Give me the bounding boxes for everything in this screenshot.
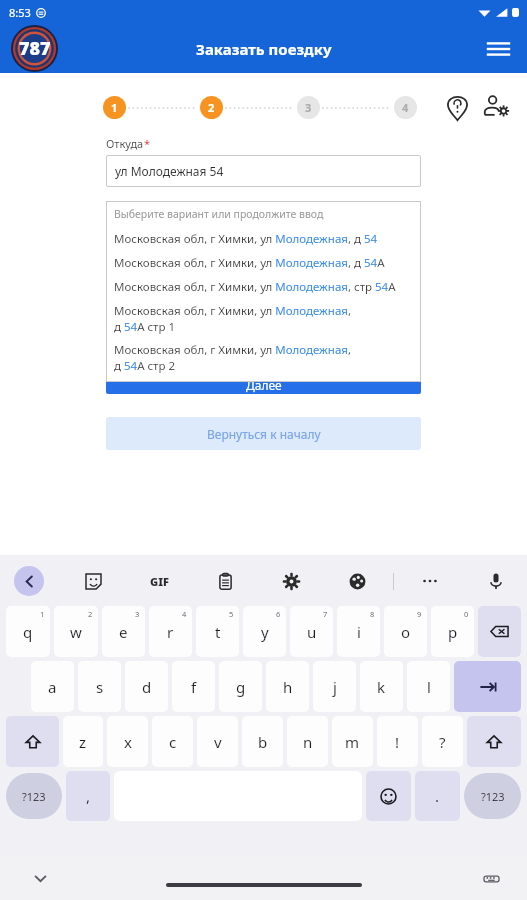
button[interactable]: Sticker — [76, 564, 110, 598]
button[interactable]: d — [125, 661, 168, 712]
staticText: . — [435, 786, 440, 806]
staticText: t — [215, 622, 221, 642]
button[interactable]: Clipboard — [208, 564, 242, 598]
staticText: Московская обл, г Химки, ул Молодежная, … — [114, 303, 352, 334]
button[interactable]: q — [6, 606, 50, 657]
staticText: 1 — [111, 100, 118, 115]
button[interactable]: 787 logo — [11, 25, 58, 72]
staticText: ул Молодежная 54 — [115, 163, 224, 179]
button[interactable]: Shift — [467, 716, 521, 767]
button[interactable]: r — [149, 606, 192, 657]
button[interactable]: s — [78, 661, 121, 712]
button[interactable]: GIF — [142, 564, 176, 598]
staticText: s — [96, 677, 104, 697]
button[interactable]: b — [242, 716, 283, 767]
staticText: 787 — [19, 36, 51, 61]
button[interactable]: Switch keyboard — [477, 864, 505, 892]
button[interactable]: Help — [441, 91, 473, 123]
staticText: Московская обл, г Химки, ул Молодежная, … — [114, 255, 385, 271]
button[interactable]: g — [219, 661, 262, 712]
button[interactable]: 1 — [103, 96, 126, 119]
button[interactable]: Account settings — [479, 90, 513, 124]
button[interactable]: Tab — [454, 661, 521, 712]
button[interactable]: y — [243, 606, 286, 657]
staticText: , — [86, 786, 91, 806]
button[interactable]: w — [54, 606, 98, 657]
button[interactable]: Московская обл, г Химки, ул Молодежная, … — [114, 339, 413, 376]
staticText: w — [70, 622, 82, 642]
staticText: d — [142, 677, 152, 697]
button[interactable]: Московская обл, г Химки, ул Молодежная, … — [114, 300, 413, 337]
button[interactable]: Theme — [340, 564, 374, 598]
staticText: u — [307, 622, 317, 642]
button[interactable]: 3 — [297, 96, 320, 119]
button[interactable]: ?123 — [6, 773, 62, 819]
button[interactable]: o — [384, 606, 427, 657]
staticText: Заказать поездку — [196, 39, 332, 59]
staticText: c — [169, 732, 177, 752]
button[interactable]: Shift — [6, 716, 59, 767]
button[interactable]: ул Молодежная 54 — [106, 155, 421, 187]
staticText: ?123 — [22, 789, 46, 804]
staticText: 5 — [229, 609, 234, 619]
staticText: Московская обл, г Химки, ул Молодежная, … — [114, 231, 378, 247]
button[interactable]: Московская обл, г Химки, ул Молодежная, … — [114, 276, 413, 298]
button[interactable]: Voice input — [479, 564, 513, 598]
staticText: y — [261, 622, 269, 642]
staticText: 4 — [402, 100, 409, 115]
staticText: o — [401, 622, 411, 642]
staticText: Вернуться к началу — [207, 426, 321, 442]
button[interactable]: c — [152, 716, 193, 767]
staticText: Откуда — [106, 136, 144, 151]
staticText: v — [214, 732, 222, 752]
staticText: h — [283, 677, 293, 697]
button[interactable]: m — [332, 716, 373, 767]
button[interactable]: v — [197, 716, 238, 767]
button[interactable]: Comma — [66, 771, 110, 821]
button[interactable]: Hide keyboard — [26, 864, 54, 892]
button[interactable]: Backspace — [478, 606, 521, 657]
staticText: g — [236, 677, 246, 697]
button[interactable]: Settings — [274, 564, 308, 598]
button[interactable]: u — [290, 606, 333, 657]
staticText: 2 — [208, 100, 215, 115]
staticText: Далее — [246, 377, 282, 393]
button[interactable]: z — [63, 716, 103, 767]
button[interactable]: ? — [422, 716, 463, 767]
staticText: Выберите вариант или продолжите ввод — [114, 207, 324, 221]
button[interactable]: Emoji — [366, 771, 411, 821]
button[interactable]: Вернуться к началу — [106, 417, 421, 450]
staticText: k — [377, 677, 386, 697]
button[interactable]: i — [337, 606, 380, 657]
button[interactable]: ! — [377, 716, 418, 767]
button[interactable]: Back — [14, 566, 44, 596]
button[interactable]: Menu — [481, 32, 515, 66]
button[interactable]: x — [107, 716, 148, 767]
button[interactable]: 2 — [200, 96, 223, 119]
button[interactable]: h — [266, 661, 309, 712]
staticText: ? — [439, 732, 446, 752]
button[interactable]: Period — [415, 771, 460, 821]
staticText: 0 — [464, 609, 469, 619]
button[interactable]: a — [31, 661, 74, 712]
button[interactable]: k — [360, 661, 403, 712]
button[interactable]: n — [287, 716, 328, 767]
button[interactable]: l — [407, 661, 450, 712]
button[interactable]: f — [172, 661, 215, 712]
button[interactable]: Далее — [106, 375, 421, 394]
button[interactable]: e — [102, 606, 145, 657]
button[interactable]: 4 — [394, 96, 417, 119]
button[interactable]: p — [431, 606, 474, 657]
button[interactable]: Московская обл, г Химки, ул Молодежная, … — [114, 228, 413, 250]
staticText: r — [167, 622, 174, 642]
button[interactable]: ?123 — [464, 773, 521, 819]
staticText: ! — [395, 732, 400, 752]
staticText: 8:53 — [9, 5, 31, 20]
button[interactable]: Московская обл, г Химки, ул Молодежная, … — [114, 252, 413, 274]
staticText: * — [144, 136, 151, 151]
button[interactable]: More — [413, 564, 447, 598]
button[interactable]: j — [313, 661, 356, 712]
button[interactable]: t — [196, 606, 239, 657]
staticText: i — [357, 622, 361, 642]
